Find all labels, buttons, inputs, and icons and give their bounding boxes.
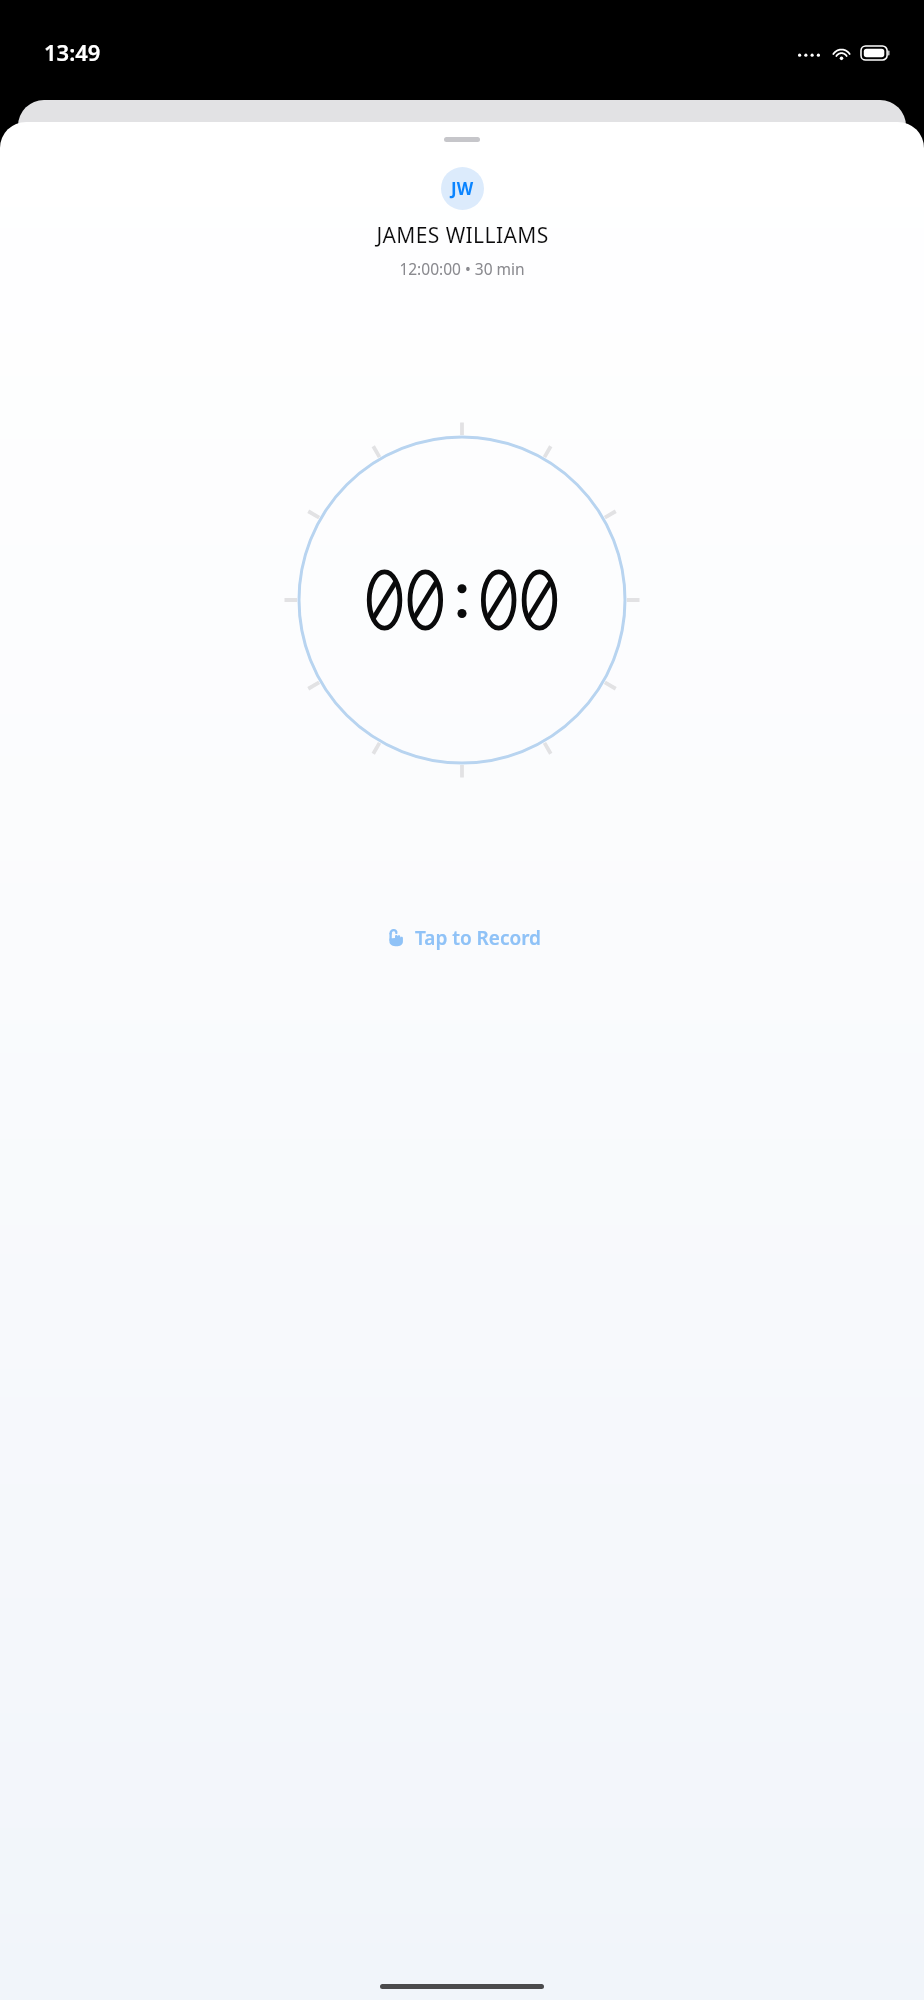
button[interactable]: JW bbox=[441, 167, 484, 210]
button[interactable] bbox=[262, 400, 662, 800]
staticText: JAMES WILLIAMS bbox=[376, 221, 549, 250]
other: Tap to record bbox=[384, 927, 406, 949]
staticText: 12:00:00 • 30 min bbox=[399, 258, 525, 279]
staticText: JW bbox=[451, 177, 474, 200]
staticText: Tap to Record bbox=[415, 925, 541, 951]
button[interactable]: Tap to record bbox=[370, 919, 555, 957]
staticText: 13:49 bbox=[44, 37, 101, 67]
